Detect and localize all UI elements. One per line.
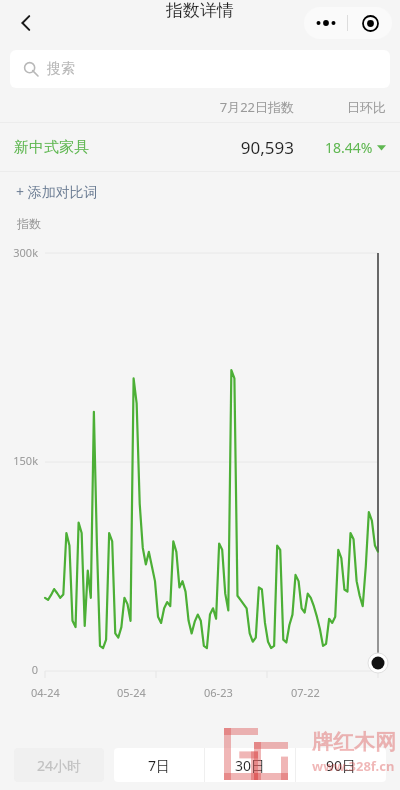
staticText: 300k [0, 245, 38, 260]
button[interactable]: 30日 [205, 748, 295, 782]
staticText: 90,593 [184, 136, 294, 159]
staticText: 指数 [17, 216, 41, 231]
staticText: 30日 [235, 756, 266, 775]
staticText: 90日 [326, 756, 357, 775]
staticText: 04-24 [31, 685, 60, 700]
button[interactable]: 24小时 [14, 748, 104, 782]
button[interactable]: 新中式家具 [0, 123, 400, 171]
staticText: 05-24 [117, 685, 146, 700]
button[interactable]: 90日 [296, 748, 386, 782]
button[interactable]: 7日 [114, 748, 204, 782]
staticText: 7日 [148, 756, 171, 775]
button[interactable]: Back [6, 3, 46, 43]
staticText: 7月22日指数 [184, 98, 294, 116]
staticText: 18.44% [325, 138, 373, 157]
staticText: 新中式家具 [14, 138, 89, 157]
button[interactable]: 搜索 [24, 50, 390, 88]
button[interactable]: + 添加对比词 [0, 172, 400, 210]
staticText: 150k [0, 453, 38, 468]
button[interactable]: More [304, 7, 347, 39]
staticText: 06-23 [204, 685, 233, 700]
staticText: www.328f.cn [312, 757, 395, 775]
staticText: 指数详情 [166, 0, 234, 21]
staticText: 07-22 [291, 685, 320, 700]
button[interactable]: Close [348, 7, 392, 39]
staticText: 24小时 [37, 756, 82, 775]
staticText: 牌红木网 [312, 729, 396, 755]
staticText: 0 [0, 662, 38, 677]
staticText: + 添加对比词 [16, 182, 98, 201]
staticText: 日环比 [294, 99, 386, 115]
staticText: 搜索 [47, 60, 75, 78]
